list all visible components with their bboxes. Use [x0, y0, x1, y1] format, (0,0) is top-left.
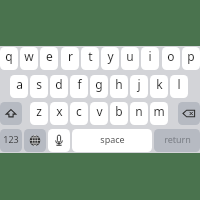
staticText: i [148, 48, 152, 64]
staticText: l [177, 76, 181, 92]
button[interactable]: g [90, 75, 108, 98]
staticText: g [95, 76, 103, 92]
staticText: h [115, 76, 123, 92]
button[interactable]: m [150, 102, 168, 125]
staticText: t [88, 48, 93, 64]
button[interactable]: 123 [0, 129, 22, 152]
button[interactable]: return [154, 129, 200, 152]
staticText: o [167, 48, 175, 64]
button[interactable]: Switch keyboard [24, 129, 46, 152]
button[interactable]: p [182, 47, 200, 70]
staticText: q [5, 48, 13, 64]
staticText: s [36, 76, 42, 92]
staticText: d [55, 76, 63, 92]
button[interactable]: h [110, 75, 128, 98]
button[interactable]: a [10, 75, 28, 98]
staticText: f [77, 76, 82, 92]
button[interactable]: w [20, 47, 38, 70]
staticText: y [107, 48, 114, 64]
staticText: k [156, 76, 163, 92]
button[interactable]: d [50, 75, 68, 98]
button[interactable]: f [70, 75, 88, 98]
staticText: space [100, 133, 125, 145]
button[interactable]: k [150, 75, 168, 98]
button[interactable]: i [141, 47, 159, 70]
button[interactable]: q [0, 47, 18, 70]
staticText: a [16, 76, 23, 92]
button[interactable]: t [81, 47, 99, 70]
staticText: v [96, 103, 103, 119]
staticText: r [68, 48, 73, 64]
button[interactable]: s [30, 75, 48, 98]
button[interactable]: u [121, 47, 139, 70]
button[interactable]: c [70, 102, 88, 125]
staticText: z [36, 103, 42, 119]
staticText: m [153, 103, 165, 119]
staticText: b [115, 103, 123, 119]
button[interactable]: b [110, 102, 128, 125]
button[interactable]: x [50, 102, 68, 125]
button[interactable]: o [162, 47, 180, 70]
staticText: return [164, 133, 191, 145]
staticText: j [137, 76, 141, 92]
button[interactable]: j [130, 75, 148, 98]
button[interactable]: r [61, 47, 79, 70]
staticText: p [187, 48, 195, 64]
button[interactable]: v [90, 102, 108, 125]
button[interactable]: n [130, 102, 148, 125]
staticText: u [126, 48, 134, 64]
button[interactable]: Voice input [48, 129, 70, 152]
staticText: e [46, 48, 53, 64]
button[interactable]: e [40, 47, 58, 70]
staticText: 123 [3, 133, 19, 145]
button[interactable]: z [30, 102, 48, 125]
button[interactable]: l [170, 75, 188, 98]
button[interactable]: Backspace [178, 102, 200, 125]
staticText: x [56, 103, 63, 119]
staticText: w [24, 48, 34, 64]
button[interactable]: space [72, 129, 152, 152]
button[interactable]: Shift [0, 102, 22, 125]
staticText: n [135, 103, 143, 119]
staticText: c [76, 103, 82, 119]
button[interactable]: y [101, 47, 119, 70]
